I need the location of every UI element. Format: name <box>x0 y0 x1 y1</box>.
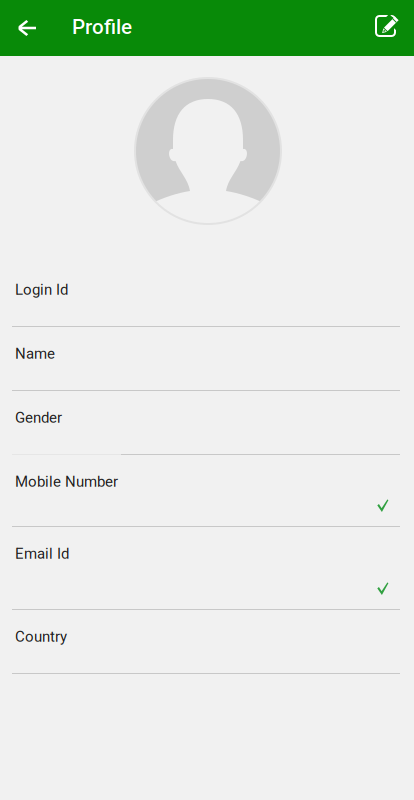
button[interactable]: Edit profile <box>360 0 414 56</box>
staticText: Profile <box>72 15 132 39</box>
staticText: Name <box>15 345 55 362</box>
button[interactable]: Country <box>12 610 400 674</box>
button[interactable]: Login Id <box>12 263 400 327</box>
button[interactable]: Back <box>0 0 54 56</box>
staticText: Email Id <box>15 545 69 562</box>
staticText: Mobile Number <box>15 473 118 490</box>
staticText: Country <box>15 628 67 645</box>
staticText: Gender <box>15 409 62 426</box>
button[interactable]: Mobile Number <box>12 455 400 527</box>
button[interactable]: Email Id <box>12 527 400 610</box>
staticText: Login Id <box>15 281 68 298</box>
button[interactable]: Gender <box>12 391 400 455</box>
button[interactable]: Name <box>12 327 400 391</box>
